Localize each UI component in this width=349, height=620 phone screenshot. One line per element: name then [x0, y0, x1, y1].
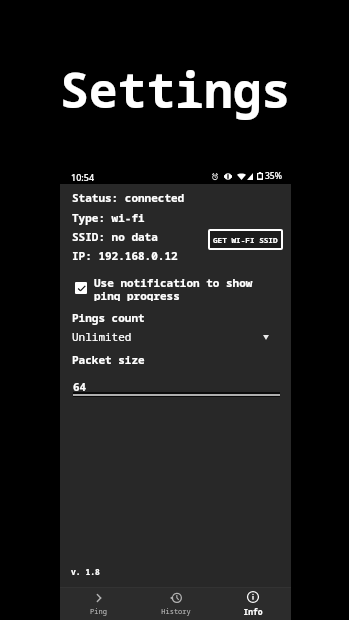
- button[interactable]: Pings count dropdown: [256, 327, 276, 347]
- staticText: SSID: no data: [72, 229, 158, 244]
- button[interactable]: Info: [214, 587, 291, 620]
- staticText: v. 1.8: [71, 566, 100, 577]
- staticText: Pings count: [72, 310, 145, 325]
- staticText: 35%: [265, 170, 282, 182]
- staticText: Settings: [60, 57, 291, 122]
- staticText: Info: [243, 606, 263, 617]
- staticText: Use notification to show ping progress: [94, 275, 253, 301]
- staticText: 64: [73, 379, 87, 394]
- staticText: History: [161, 607, 191, 617]
- staticText: Ping: [90, 607, 107, 617]
- button[interactable]: Ping: [60, 587, 137, 620]
- button[interactable]: GET WI-FI SSID: [208, 229, 283, 250]
- staticText: Status: connected: [72, 190, 185, 205]
- button[interactable]: History: [137, 587, 214, 620]
- staticText: Unlimited: [72, 329, 132, 344]
- staticText: Packet size: [72, 352, 145, 367]
- staticText: IP: 192.168.0.12: [72, 248, 178, 263]
- button[interactable]: Use notification to show ping progress: [75, 275, 283, 301]
- staticText: 10:54: [71, 171, 95, 183]
- staticText: GET WI-FI SSID: [213, 235, 278, 245]
- staticText: Type: wi-fi: [72, 210, 145, 225]
